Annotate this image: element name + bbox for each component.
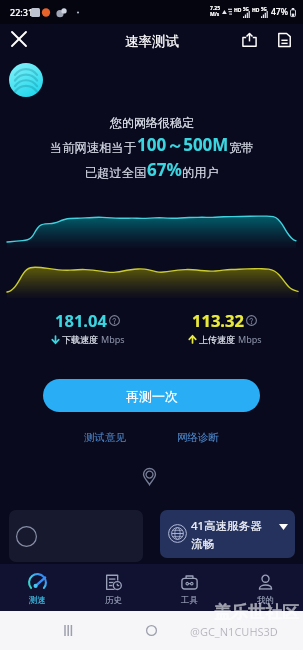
button[interactable]: Info xyxy=(109,315,120,326)
staticText: 181.04 xyxy=(55,309,107,331)
staticText: 速率测试 xyxy=(125,33,179,50)
staticText: 网络诊断 xyxy=(177,431,219,444)
staticText: 7.25 xyxy=(210,5,220,12)
staticText: M/s xyxy=(210,11,220,18)
staticText: HD xyxy=(234,7,242,14)
button[interactable]: 网络诊断 xyxy=(174,428,222,447)
staticText: 5G xyxy=(261,6,267,12)
staticText: 5G xyxy=(243,6,249,12)
staticText: 工具 xyxy=(181,595,198,606)
button[interactable]: 我的 xyxy=(227,564,303,611)
staticText: 测速 xyxy=(29,595,46,606)
staticText: 已超过全国 xyxy=(85,165,147,180)
button[interactable]: Location xyxy=(141,467,158,486)
staticText: 100～500M xyxy=(137,133,229,156)
staticText: 67% xyxy=(147,158,182,181)
staticText: 历史 xyxy=(105,595,122,606)
button[interactable]: 再测一次 xyxy=(43,379,260,412)
staticText: 113.32 xyxy=(192,309,244,331)
staticText: 下载速度 xyxy=(62,334,98,345)
button[interactable]: Share xyxy=(236,27,262,53)
staticText: 流畅 xyxy=(191,537,214,551)
staticText: @GC_N1CUHS3D xyxy=(190,624,278,639)
staticText: 再测一次 xyxy=(126,388,178,404)
staticText: 上传速度 xyxy=(199,334,235,345)
staticText: 当前网速相当于 xyxy=(50,140,137,155)
staticText: 我的 xyxy=(257,595,274,606)
staticText: 您的网络很稳定 xyxy=(110,115,194,130)
staticText: 22:31 xyxy=(10,6,34,18)
button[interactable]: Info xyxy=(246,315,257,326)
button[interactable]: 测试意见 xyxy=(81,428,129,447)
staticText: 47% xyxy=(271,6,288,18)
staticText: Mbps xyxy=(101,333,125,345)
staticText: 41高速服务器 xyxy=(191,518,262,534)
button[interactable]: 工具 xyxy=(151,564,227,611)
staticText: HD xyxy=(252,7,260,14)
staticText: 盖乐世社区 xyxy=(214,602,299,623)
button[interactable]: Report xyxy=(271,27,297,53)
staticText: Mbps xyxy=(238,333,262,345)
button[interactable]: Close xyxy=(5,25,33,53)
button[interactable]: 41高速服务器 xyxy=(160,510,295,558)
button[interactable]: 历史 xyxy=(75,564,151,611)
button[interactable]: 测速 xyxy=(0,564,75,611)
button[interactable] xyxy=(9,510,143,562)
staticText: 测试意见 xyxy=(84,431,126,444)
staticText: 宽带 xyxy=(229,140,254,155)
staticText: 的用户 xyxy=(182,165,219,180)
